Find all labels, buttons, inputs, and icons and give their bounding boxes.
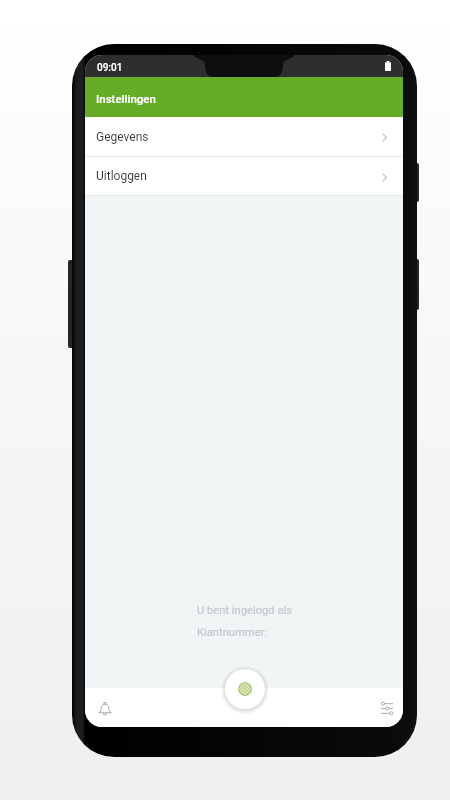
staticText: Instellingen [96,92,156,105]
staticText: Klantnummer: [197,626,268,639]
button[interactable]: Uitloggen [85,157,403,195]
button[interactable]: Settings [374,688,400,727]
staticText: 09:01 [97,62,123,74]
button[interactable]: Notifications [92,688,118,727]
button[interactable]: Gegevens [85,117,403,156]
staticText: Gegevens [96,130,149,144]
staticText: Uitloggen [96,169,147,183]
staticText: U bent ingelogd als [197,604,293,617]
button[interactable]: Home [225,669,265,709]
